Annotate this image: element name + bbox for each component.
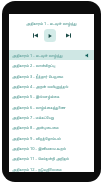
button[interactable]: அதிகாரம் 3 - நீத்தார் பெருமை [9, 71, 94, 81]
staticText: அதிகாரம் 1 - கடவுள் வாழ்த்து [26, 21, 77, 26]
button[interactable]: Next track [63, 30, 74, 41]
staticText: அதிகாரம் 9 - விருந்தோம்பல் [12, 136, 61, 141]
other: Audio [85, 53, 90, 58]
button[interactable]: Previous track [30, 30, 41, 41]
staticText: அதிகாரம் 2 - வான்சிறப்பு [12, 63, 55, 68]
button[interactable]: அதிகாரம் 1 - கடவுள் வாழ்த்து [9, 50, 94, 60]
button[interactable]: அதிகாரம் 6 - வாழ்க்கைத்துணை [9, 102, 94, 112]
button[interactable]: அதிகாரம் 12 - நடுவுநிலைமை [9, 164, 94, 174]
staticText: அதிகாரம் 7 - மக்கட்பேறு [12, 115, 55, 120]
staticText: அதிகாரம் 8 - அன்புடைமை [12, 125, 59, 130]
button[interactable]: அதிகாரம் 9 - விருந்தோம்பல் [9, 133, 94, 143]
button[interactable]: அதிகாரம் 7 - மக்கட்பேறு [9, 112, 94, 122]
button[interactable]: அதிகாரம் 4 - அறன் வலியுறுத்தல் [9, 81, 94, 91]
button[interactable]: அதிகாரம் 10 - இனியவை கூறல் [9, 143, 94, 153]
staticText: அதிகாரம் 5 - இல்வாழ்க்கை [12, 94, 60, 99]
button[interactable]: அதிகாரம் 2 - வான்சிறப்பு [9, 60, 94, 70]
staticText: அதிகாரம் 10 - இனியவை கூறல் [12, 146, 66, 151]
staticText: அதிகாரம் 1 - கடவுள் வாழ்த்து [12, 53, 63, 58]
staticText: அதிகாரம் 12 - நடுவுநிலைமை [12, 167, 62, 172]
staticText: அதிகாரம் 3 - நீத்தார் பெருமை [12, 74, 64, 79]
button[interactable]: அதிகாரம் 11 - செய்நன்றி அறிதல் [9, 153, 94, 163]
staticText: அதிகாரம் 4 - அறன் வலியுறுத்தல் [12, 84, 69, 89]
button[interactable]: அதிகாரம் 8 - அன்புடைமை [9, 122, 94, 132]
button[interactable]: அதிகாரம் 5 - இல்வாழ்க்கை [9, 91, 94, 101]
staticText: அதிகாரம் 11 - செய்நன்றி அறிதல் [12, 156, 69, 161]
staticText: அதிகாரம் 6 - வாழ்க்கைத்துணை [12, 105, 66, 110]
button[interactable]: Play [44, 29, 56, 42]
